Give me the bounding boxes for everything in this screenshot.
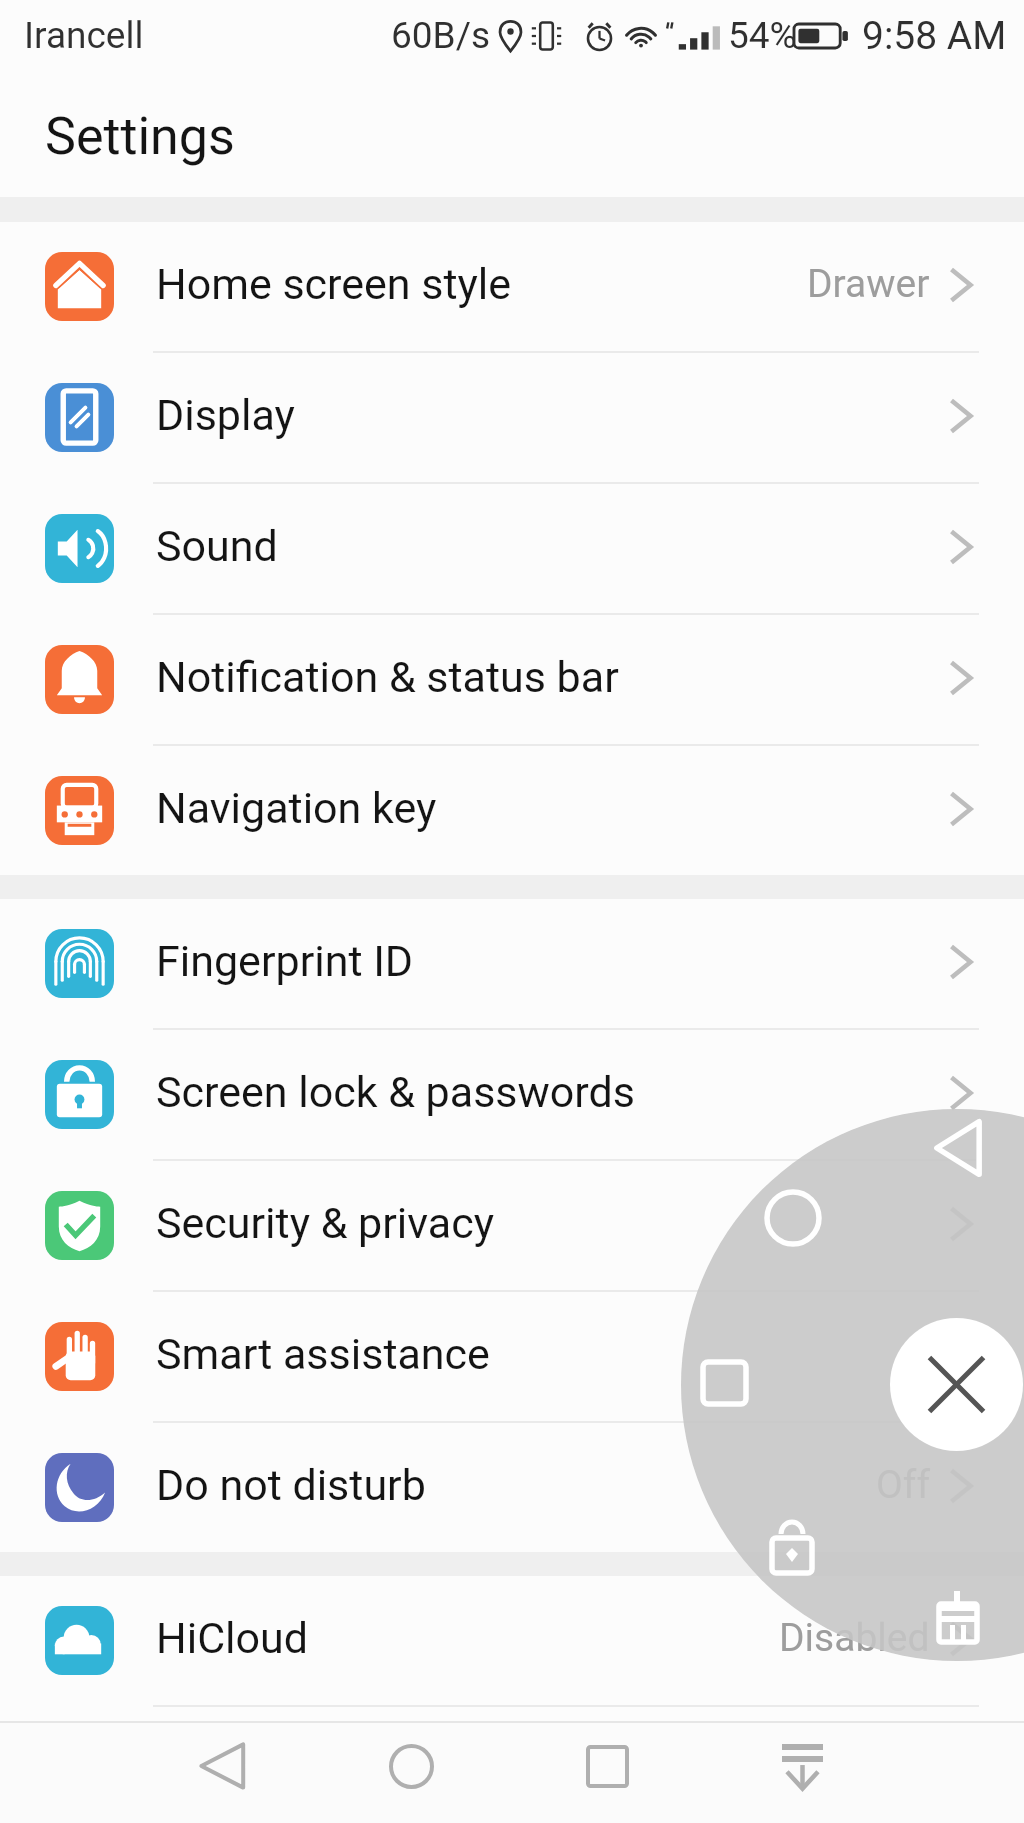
staticText: Fingerprint ID (156, 936, 414, 986)
staticText: Sound (156, 521, 278, 571)
staticText: Drawer (807, 261, 930, 307)
button[interactable]: Back (167, 1716, 277, 1816)
button[interactable]: Fingerprint ID (0, 899, 1024, 1028)
staticText: Navigation key (156, 783, 437, 833)
button[interactable]: Notification & status bar (0, 615, 1024, 744)
button[interactable]: Display (0, 353, 1024, 482)
button[interactable]: Lock screen (769, 1519, 815, 1576)
staticText: Screen lock & passwords (156, 1067, 635, 1117)
button[interactable]: Recent apps (700, 1359, 749, 1407)
button[interactable]: Home screen style (0, 222, 1024, 351)
button[interactable]: Close navigation dock (890, 1318, 1023, 1451)
staticText: Settings (45, 106, 235, 167)
staticText: Display (156, 390, 295, 440)
button[interactable]: Navigation key (0, 746, 1024, 875)
button[interactable]: Home (764, 1189, 822, 1247)
staticText: Irancell (24, 14, 144, 57)
button[interactable]: Do not disturb (0, 1423, 1024, 1552)
staticText: Off (876, 1462, 930, 1508)
button[interactable]: Recent apps (552, 1716, 662, 1816)
button[interactable]: HiCloud (0, 1576, 1024, 1705)
button[interactable]: Clean up (935, 1589, 981, 1645)
staticText: Security & privacy (156, 1198, 494, 1248)
staticText: Disabled (779, 1615, 930, 1661)
button[interactable]: Back (935, 1120, 981, 1176)
staticText: 54% (728, 14, 797, 57)
staticText: 9:58 AM (862, 13, 1007, 59)
staticText: Smart assistance (156, 1329, 490, 1379)
button[interactable]: Smart assistance (0, 1292, 1024, 1421)
staticText: Notification & status bar (156, 652, 619, 702)
button[interactable]: Screen lock & passwords (0, 1030, 1024, 1159)
staticText: Home screen style (156, 259, 512, 309)
staticText: Do not disturb (156, 1460, 426, 1510)
button[interactable]: Security & privacy (0, 1161, 1024, 1290)
button[interactable]: Home (356, 1716, 466, 1816)
button[interactable]: Notification shade (747, 1716, 857, 1816)
button[interactable]: Sound (0, 484, 1024, 613)
staticText: HiCloud (156, 1613, 309, 1663)
staticText: 60B/s (391, 14, 491, 57)
